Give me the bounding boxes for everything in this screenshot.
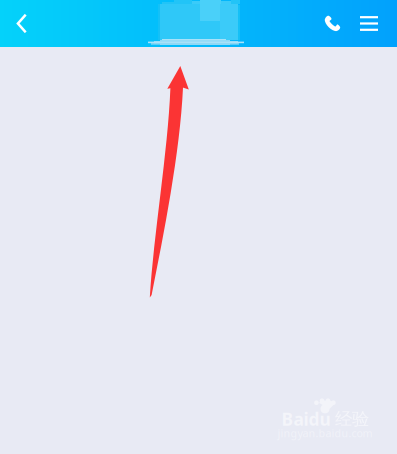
button[interactable]: Back — [0, 0, 44, 47]
button[interactable]: Menu — [349, 0, 389, 47]
staticText: Baidu — [281, 407, 330, 430]
staticText: 经验 — [335, 408, 369, 430]
button[interactable]: Call — [312, 0, 352, 47]
